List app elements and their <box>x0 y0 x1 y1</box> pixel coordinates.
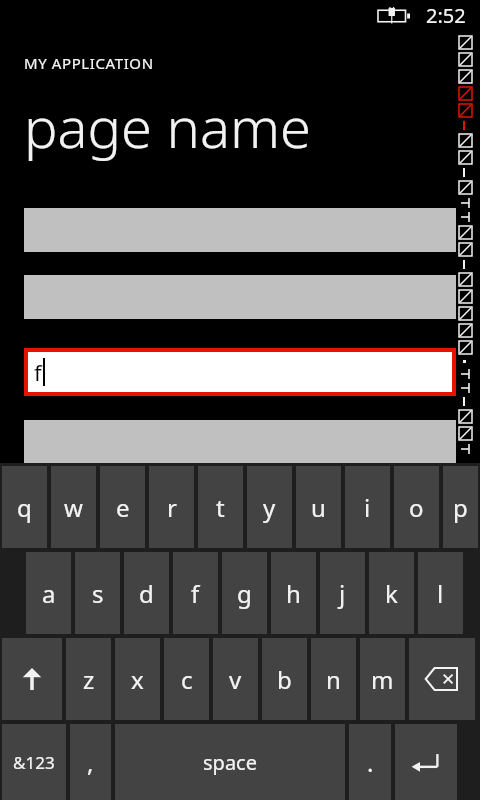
button[interactable]: v <box>213 638 258 720</box>
staticText: q <box>17 491 32 524</box>
staticText: t <box>216 491 225 524</box>
button[interactable]: , <box>70 724 111 800</box>
staticText: f <box>34 357 42 387</box>
button[interactable]: Enter <box>395 724 457 800</box>
staticText: y <box>263 491 276 524</box>
staticText: k <box>385 577 398 610</box>
staticText: n <box>326 663 341 696</box>
button[interactable]: &123 <box>2 724 66 800</box>
button[interactable]: k <box>369 552 414 634</box>
staticText: o <box>409 491 424 524</box>
staticText: f <box>191 577 200 610</box>
staticText: , <box>87 746 94 779</box>
staticText: &123 <box>13 751 55 774</box>
staticText: d <box>139 577 154 610</box>
button[interactable] <box>24 420 456 464</box>
staticText: l <box>437 577 444 610</box>
staticText: g <box>237 577 252 610</box>
button[interactable]: p <box>443 466 478 548</box>
staticText: b <box>277 663 292 696</box>
button[interactable]: Backspace <box>409 638 475 720</box>
staticText: v <box>229 663 242 696</box>
staticText: h <box>286 577 301 610</box>
staticText: page name <box>24 88 311 164</box>
staticText: . <box>367 746 374 779</box>
staticText: e <box>116 491 130 524</box>
button[interactable]: g <box>222 552 267 634</box>
staticText: x <box>131 663 144 696</box>
button[interactable]: r <box>149 466 194 548</box>
button[interactable]: z <box>66 638 111 720</box>
staticText: a <box>42 577 56 610</box>
button[interactable]: w <box>51 466 96 548</box>
button[interactable]: f <box>173 552 218 634</box>
staticText: s <box>92 577 104 610</box>
staticText: MY APPLICATION <box>24 53 154 73</box>
button[interactable]: j <box>320 552 365 634</box>
button[interactable]: y <box>247 466 292 548</box>
staticText: z <box>83 663 95 696</box>
button[interactable]: i <box>345 466 390 548</box>
button[interactable]: u <box>296 466 341 548</box>
staticText: c <box>181 663 193 696</box>
button[interactable]: . <box>349 724 391 800</box>
button[interactable]: Shift <box>2 638 62 720</box>
staticText: u <box>311 491 326 524</box>
staticText: r <box>167 491 177 524</box>
button[interactable]: q <box>2 466 47 548</box>
button[interactable]: h <box>271 552 316 634</box>
button[interactable]: m <box>360 638 405 720</box>
button[interactable]: s <box>75 552 120 634</box>
staticText: j <box>339 577 346 610</box>
other: Battery charging <box>378 7 410 25</box>
button[interactable]: f <box>24 348 456 396</box>
staticText: p <box>453 491 468 524</box>
button[interactable]: x <box>115 638 160 720</box>
button[interactable]: e <box>100 466 145 548</box>
button[interactable]: l <box>418 552 463 634</box>
staticText: i <box>364 491 371 524</box>
button[interactable]: b <box>262 638 307 720</box>
staticText: m <box>371 663 394 696</box>
button[interactable]: t <box>198 466 243 548</box>
staticText: w <box>64 491 83 524</box>
button[interactable]: space <box>115 724 345 800</box>
button[interactable]: n <box>311 638 356 720</box>
button[interactable]: d <box>124 552 169 634</box>
button[interactable]: o <box>394 466 439 548</box>
staticText: 2:52 <box>426 2 466 29</box>
button[interactable]: c <box>164 638 209 720</box>
staticText: space <box>203 749 257 776</box>
button[interactable]: a <box>26 552 71 634</box>
